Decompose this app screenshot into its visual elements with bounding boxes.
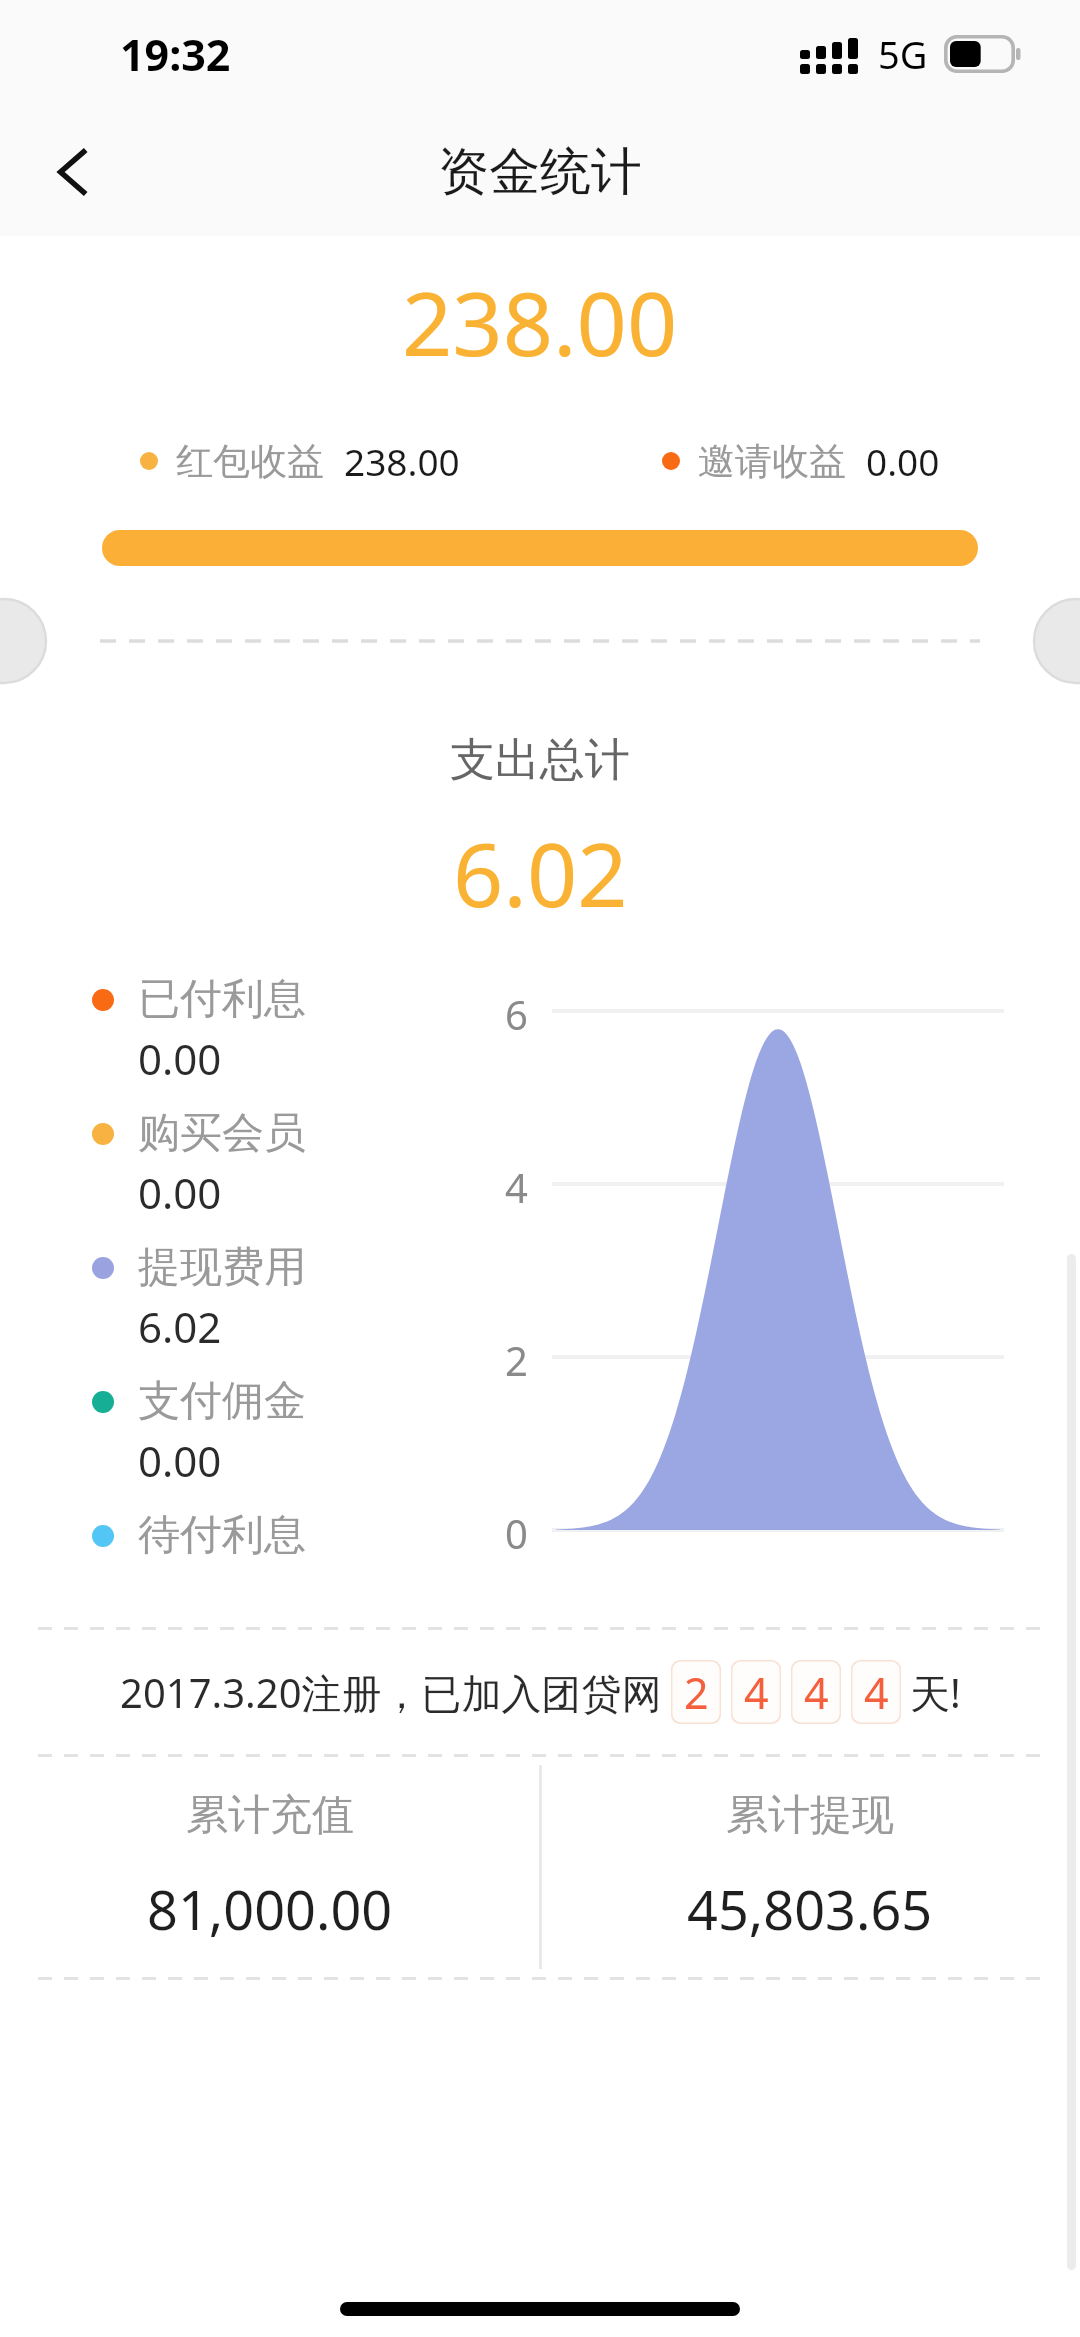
button[interactable]: Back (26, 124, 122, 220)
staticText: 45,803.65 (687, 1872, 933, 1946)
staticText: 238.00 (402, 262, 678, 382)
staticText: 0.00 (138, 1432, 222, 1489)
staticText: 0.00 (138, 1164, 222, 1221)
button[interactable]: 提现费用 (92, 1241, 306, 1355)
staticText: 资金统计 (438, 140, 642, 204)
staticText: 天! (910, 1665, 961, 1720)
button[interactable]: 累计提现 (540, 1757, 1080, 1977)
staticText: 0.00 (866, 436, 940, 486)
button[interactable]: 已付利息 (92, 973, 306, 1087)
button[interactable]: 红包收益 (140, 436, 460, 486)
staticText: 0.00 (138, 1030, 222, 1087)
staticText: 累计充值 (186, 1789, 354, 1842)
staticText: 4 (470, 1160, 528, 1214)
staticText: 2017.3.20注册，已加入团贷网 (120, 1665, 662, 1720)
staticText: 邀请收益 (698, 438, 846, 485)
staticText: 2 (684, 1663, 709, 1722)
button[interactable]: 累计充值 (0, 1757, 540, 1977)
staticText: 累计提现 (726, 1789, 894, 1842)
staticText: 19:32 (120, 25, 231, 84)
button[interactable]: 购买会员 (92, 1107, 306, 1221)
staticText: 已付利息 (138, 973, 306, 1026)
button[interactable]: 待付利息 (92, 1509, 306, 1567)
staticText: 4 (864, 1663, 889, 1722)
staticText: 支付佣金 (138, 1375, 306, 1428)
staticText: 81,000.00 (147, 1872, 393, 1946)
staticText: 提现费用 (138, 1241, 306, 1294)
staticText: 待付利息 (138, 1509, 306, 1562)
staticText: 红包收益 (176, 438, 324, 485)
staticText: 5G (878, 28, 928, 80)
staticText: 4 (804, 1663, 829, 1722)
staticText: 6.02 (453, 813, 628, 933)
button[interactable]: 邀请收益 (662, 436, 940, 486)
staticText: 6 (470, 987, 528, 1041)
button[interactable] (102, 530, 978, 566)
staticText: 6.02 (138, 1298, 222, 1355)
staticText: 4 (744, 1663, 769, 1722)
button[interactable]: 2017.3.20注册，已加入团贷网 (0, 1630, 1080, 1754)
staticText: 238.00 (344, 436, 460, 486)
staticText: 支出总计 (450, 732, 630, 789)
staticText: 0 (470, 1506, 528, 1560)
staticText: 2 (470, 1333, 528, 1387)
staticText: 购买会员 (138, 1107, 306, 1160)
button[interactable]: 支付佣金 (92, 1375, 306, 1489)
